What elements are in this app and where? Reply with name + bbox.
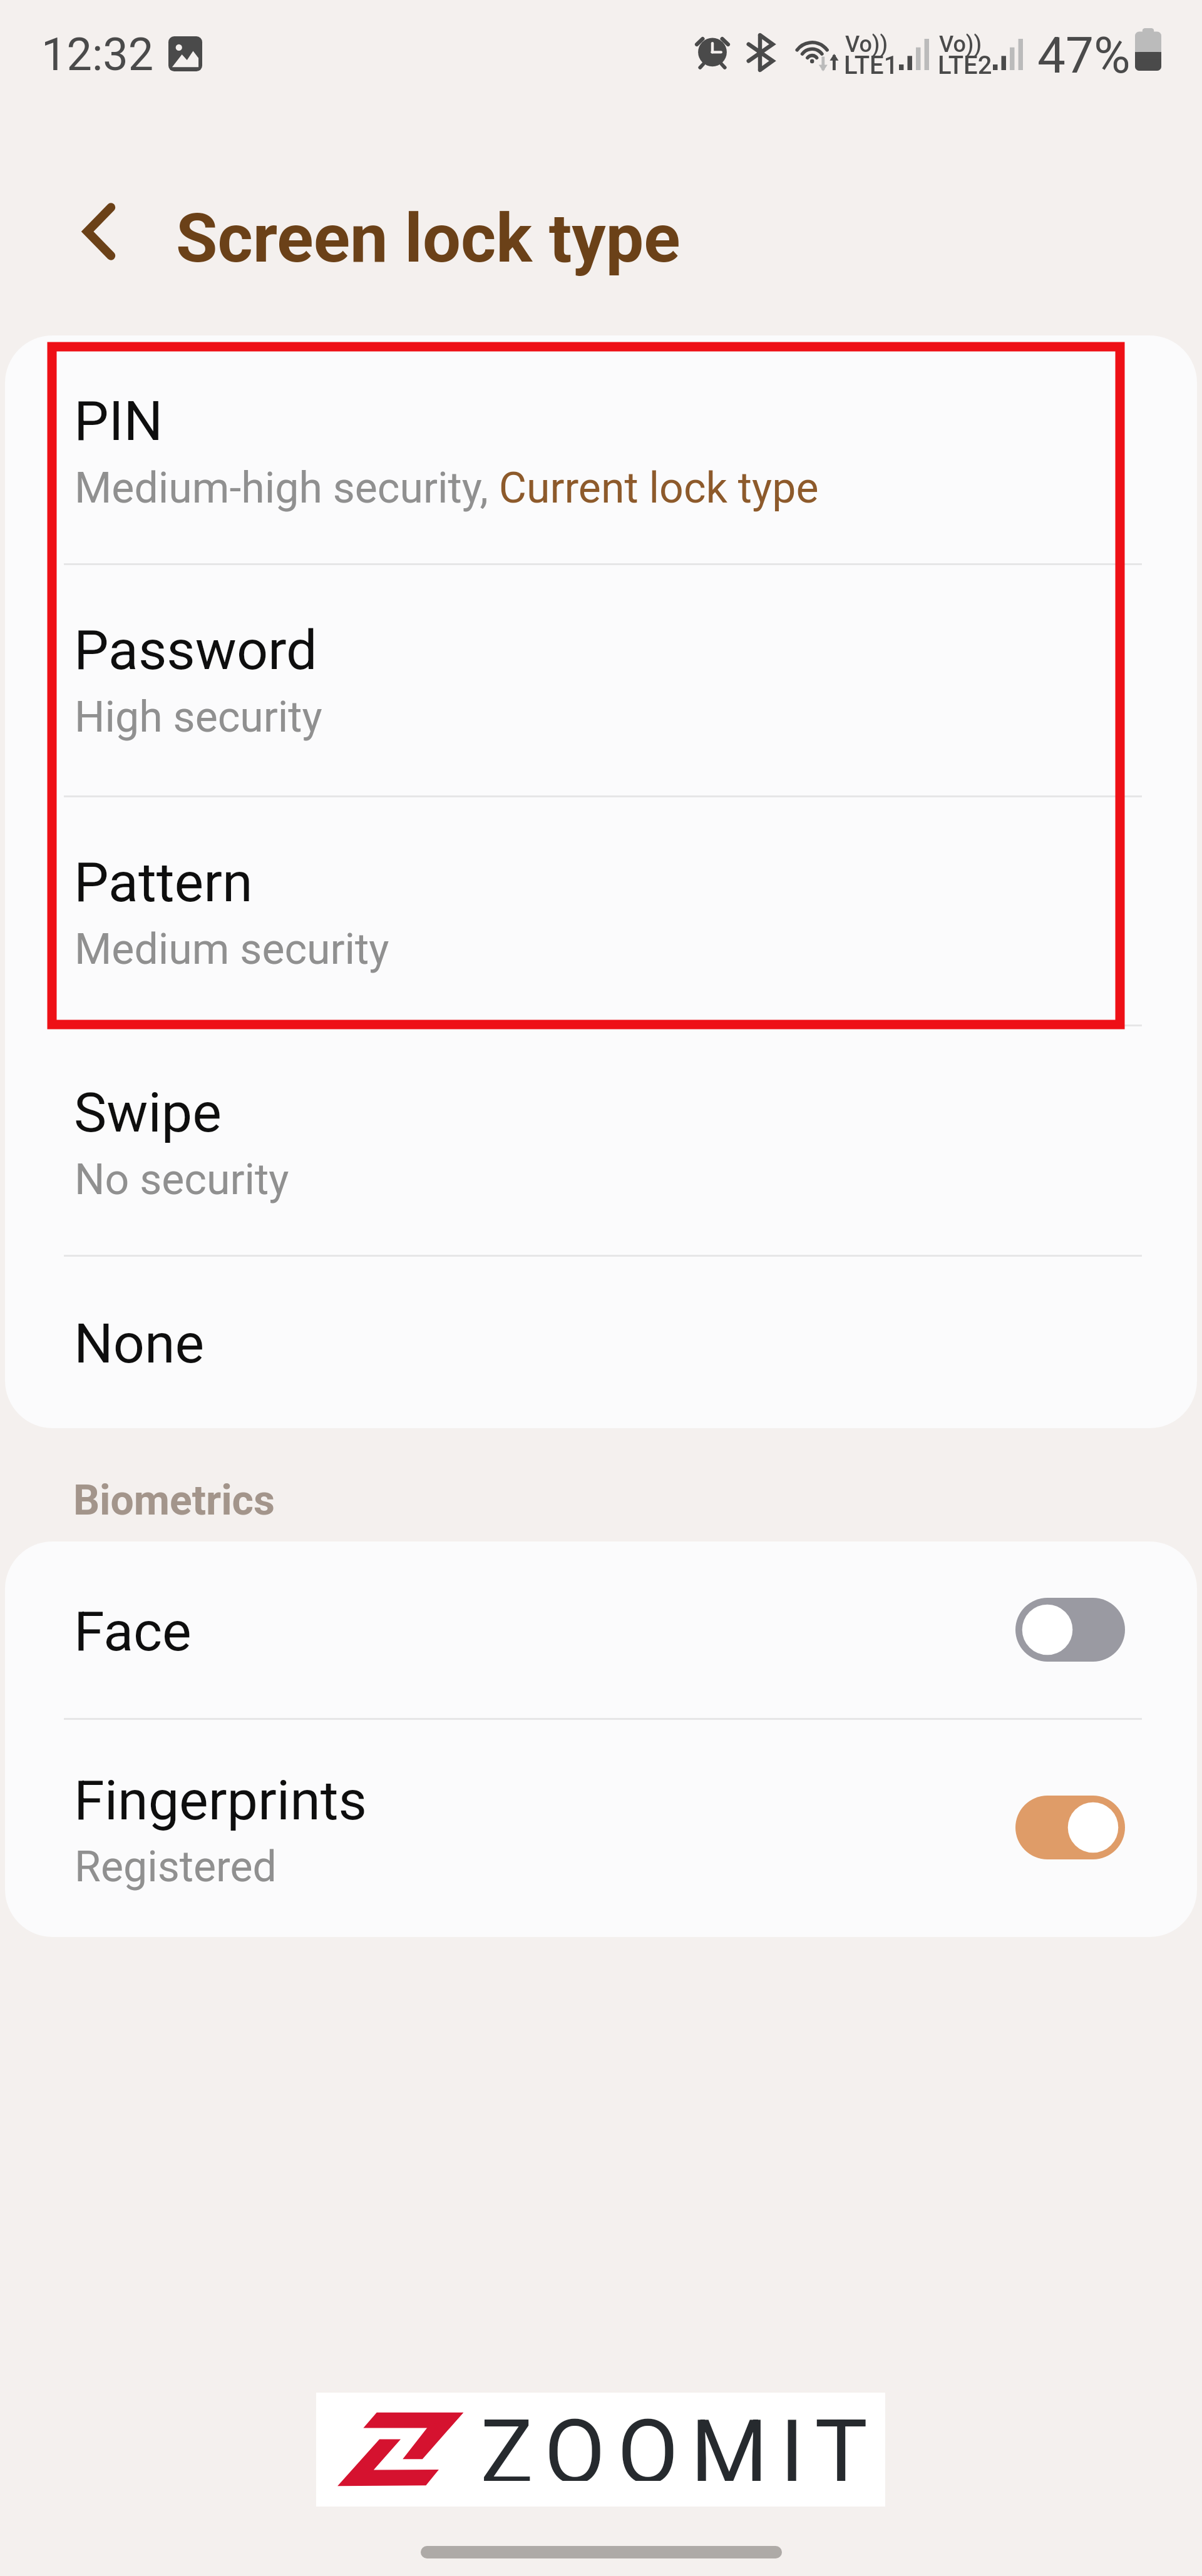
button[interactable]: PIN: [5, 335, 1197, 563]
staticText: PIN: [74, 389, 163, 453]
staticText: Biometrics: [73, 1476, 275, 1525]
button[interactable]: Swipe: [5, 1025, 1197, 1255]
staticText: Registered: [74, 1842, 277, 1892]
staticText: No security: [74, 1155, 289, 1205]
staticText: Fingerprints: [74, 1768, 367, 1832]
staticText: Vo)): [845, 31, 888, 58]
staticText: ZOOMIT: [480, 2401, 880, 2481]
staticText: Medium security: [74, 924, 389, 974]
staticText: Vo)): [939, 31, 982, 58]
staticText: Pattern: [74, 850, 253, 914]
button[interactable]: None: [5, 1255, 1197, 1428]
button[interactable]: Turn on: [1015, 1598, 1125, 1662]
staticText: High security: [74, 692, 322, 742]
staticText: 12:32: [41, 28, 154, 81]
button[interactable]: Pattern: [5, 795, 1197, 1025]
staticText: Swipe: [74, 1080, 222, 1145]
button[interactable]: Back: [47, 176, 147, 289]
staticText: None: [74, 1311, 205, 1376]
button[interactable]: Password: [5, 563, 1197, 795]
button[interactable]: Face: [5, 1541, 1197, 1718]
staticText: Screen lock type: [176, 199, 681, 279]
button[interactable]: Turn off: [1015, 1796, 1125, 1859]
staticText: LTE1: [844, 51, 898, 80]
button[interactable]: Fingerprints: [5, 1718, 1197, 1937]
staticText: Face: [74, 1599, 192, 1664]
staticText: LTE2: [938, 51, 992, 80]
staticText: Password: [74, 618, 317, 682]
staticText: 47%: [1037, 26, 1131, 85]
staticText: Medium-high security, Current lock type: [74, 463, 819, 513]
